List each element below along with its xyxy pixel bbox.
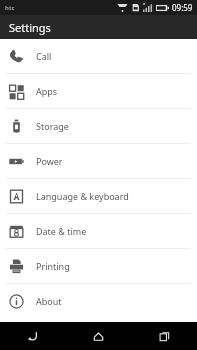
button[interactable]: Apps — [0, 74, 197, 108]
button[interactable]: Storage — [0, 109, 197, 143]
button[interactable]: Language & keyboard — [0, 179, 197, 213]
staticText: About — [36, 295, 62, 307]
staticText: Storage — [36, 120, 69, 132]
button[interactable]: Recent apps — [131, 322, 197, 350]
staticText: Settings — [9, 20, 51, 35]
staticText: Call — [36, 50, 52, 62]
staticText: Printing — [36, 260, 70, 272]
button[interactable]: About — [0, 284, 197, 318]
button[interactable]: Date & time — [0, 214, 197, 248]
button[interactable]: Call — [0, 39, 197, 73]
button[interactable]: Back — [0, 322, 65, 350]
staticText: htc — [5, 4, 15, 12]
staticText: Power — [36, 155, 63, 167]
staticText: Language & keyboard — [36, 190, 129, 202]
button[interactable]: Power — [0, 144, 197, 178]
staticText: 09:59 — [172, 2, 193, 13]
staticText: Apps — [36, 85, 58, 97]
staticText: Date & time — [36, 225, 87, 237]
button[interactable]: Printing — [0, 249, 197, 283]
button[interactable]: Home — [65, 322, 131, 350]
